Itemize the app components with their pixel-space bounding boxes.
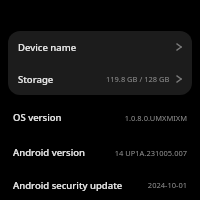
staticText: 119.8 GB / 128 GB bbox=[106, 74, 170, 84]
staticText: 2024-10-01 bbox=[147, 180, 187, 190]
staticText: 1.0.8.0.UMXMIXM bbox=[124, 113, 187, 123]
staticText: OS version bbox=[13, 111, 62, 124]
button[interactable]: Device name bbox=[8, 31, 192, 63]
button[interactable]: Storage bbox=[8, 63, 192, 95]
staticText: Storage bbox=[18, 73, 54, 86]
staticText: Device name bbox=[18, 41, 77, 54]
button[interactable]: Android version bbox=[0, 135, 200, 170]
button[interactable]: Android security update bbox=[0, 170, 200, 200]
button[interactable]: OS version bbox=[0, 100, 200, 135]
staticText: Android security update bbox=[13, 179, 123, 192]
staticText: 14 UP1A.231005.007 bbox=[114, 148, 187, 158]
staticText: Android version bbox=[13, 146, 86, 159]
